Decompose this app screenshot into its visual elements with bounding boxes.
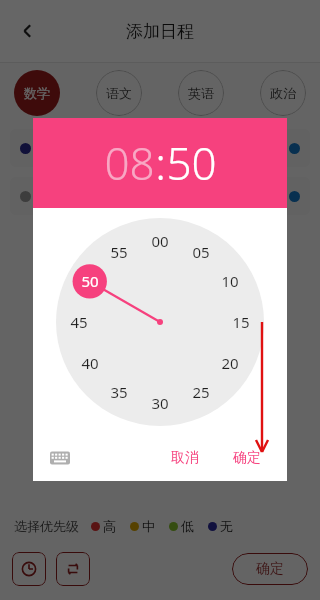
- staticText: 10: [221, 271, 239, 291]
- staticText: 20: [221, 353, 239, 373]
- button[interactable]: 语文: [96, 70, 142, 116]
- staticText: 选择优先级: [14, 518, 79, 534]
- staticText: 添加日程: [126, 21, 194, 42]
- staticText: 高: [103, 518, 116, 534]
- staticText: 35: [110, 382, 128, 402]
- staticText: 15: [232, 312, 250, 332]
- button[interactable]: Time: [12, 552, 46, 586]
- button[interactable]: 00: [145, 231, 175, 251]
- button[interactable]: Repeat: [56, 552, 90, 586]
- staticText: 语文: [106, 85, 132, 101]
- button[interactable]: 40: [75, 353, 105, 373]
- button[interactable]: 35: [104, 382, 134, 402]
- button[interactable]: 英语: [178, 70, 224, 116]
- button[interactable]: 50: [75, 271, 105, 291]
- button[interactable]: 55: [104, 242, 134, 262]
- staticText: 数学: [24, 85, 50, 101]
- staticText: 低: [181, 518, 194, 534]
- button[interactable]: [10, 177, 310, 215]
- staticText: 取消: [171, 449, 199, 467]
- button[interactable]: 确定: [223, 443, 271, 473]
- staticText: 中: [142, 518, 155, 534]
- button[interactable]: 取消: [161, 443, 209, 473]
- button[interactable]: 政治: [260, 70, 306, 116]
- staticText: 50: [81, 271, 99, 291]
- staticText: :: [155, 133, 166, 193]
- button[interactable]: 20: [215, 353, 245, 373]
- staticText: 08: [104, 133, 155, 193]
- staticText: 55: [110, 242, 128, 262]
- button[interactable]: Keyboard input: [45, 443, 75, 473]
- staticText: 英语: [188, 85, 214, 101]
- staticText: 无: [220, 518, 233, 534]
- button[interactable]: 50: [166, 133, 217, 193]
- button[interactable]: 15: [226, 312, 256, 332]
- staticText: 50: [166, 133, 217, 193]
- button[interactable]: [10, 129, 310, 167]
- button[interactable]: 30: [145, 393, 175, 413]
- staticText: 30: [151, 393, 169, 413]
- staticText: 40: [81, 353, 99, 373]
- button[interactable]: 10: [215, 271, 245, 291]
- staticText: 45: [70, 312, 88, 332]
- staticText: 05: [192, 242, 210, 262]
- button[interactable]: 高: [91, 518, 116, 534]
- button[interactable]: 无: [208, 518, 233, 534]
- button[interactable]: 08: [104, 133, 155, 193]
- button[interactable]: 05: [186, 242, 216, 262]
- button[interactable]: 45: [64, 312, 94, 332]
- button[interactable]: 25: [186, 382, 216, 402]
- button[interactable]: Back: [8, 11, 48, 51]
- button[interactable]: 中: [130, 518, 155, 534]
- staticText: 确定: [233, 449, 261, 467]
- button[interactable]: 数学: [14, 70, 60, 116]
- staticText: 00: [151, 231, 169, 251]
- staticText: 政治: [270, 85, 296, 101]
- button[interactable]: 确定: [232, 553, 308, 585]
- staticText: 确定: [256, 560, 284, 578]
- button[interactable]: 低: [169, 518, 194, 534]
- staticText: 25: [192, 382, 210, 402]
